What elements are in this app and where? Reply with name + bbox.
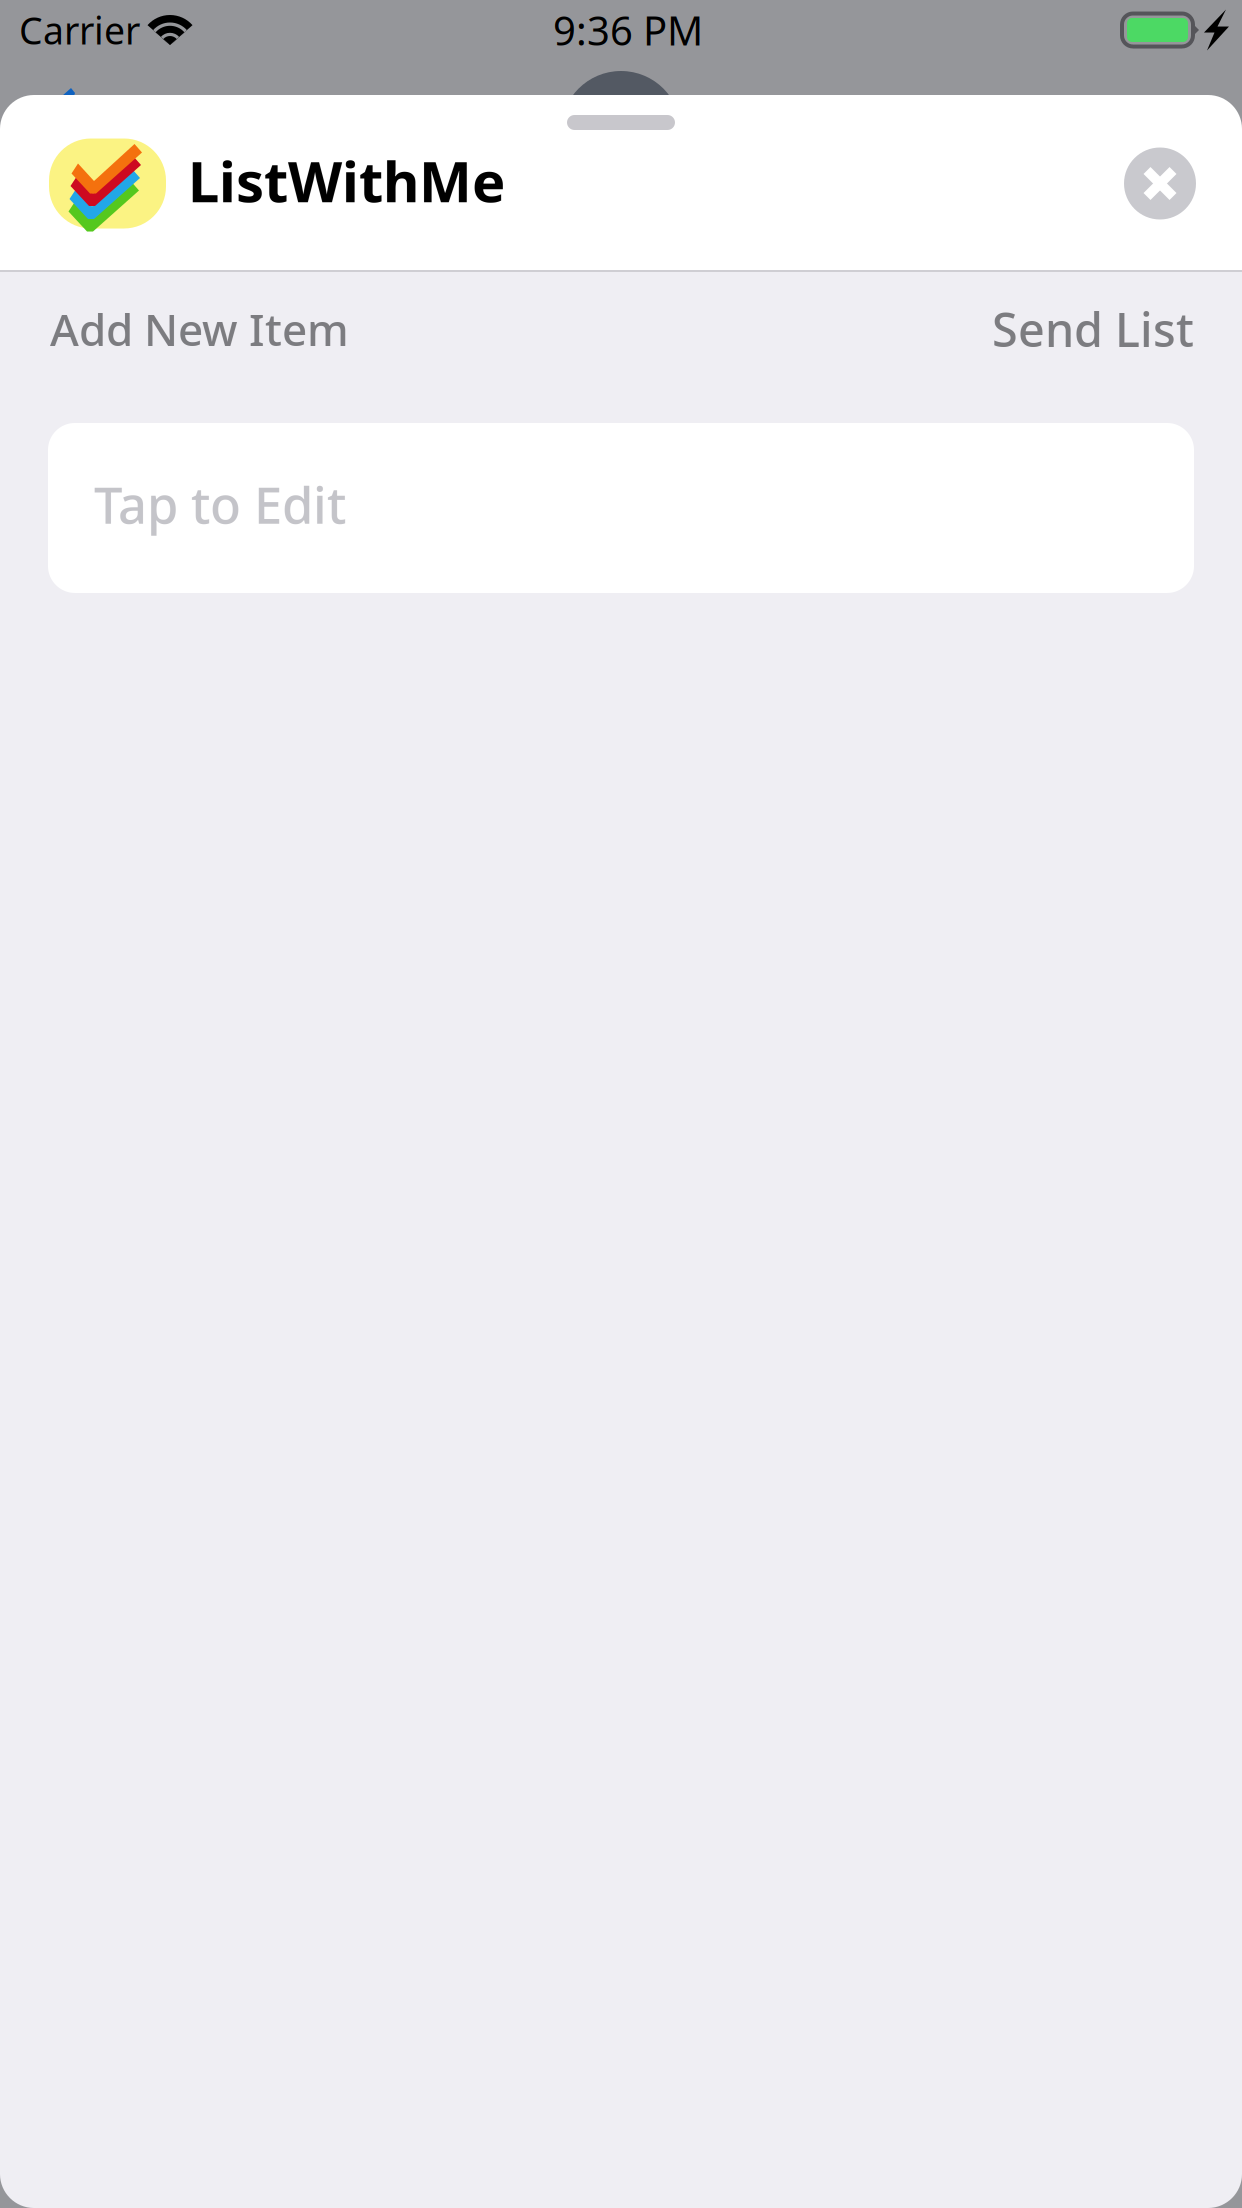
button[interactable]: Tap to Edit — [0, 423, 1242, 593]
staticText: Carrier — [19, 5, 140, 55]
staticText: ListWithMe — [188, 143, 505, 218]
button[interactable]: Send List — [968, 284, 1242, 374]
button[interactable]: Add New Item — [0, 286, 373, 372]
staticText: 9:36 PM — [553, 3, 703, 56]
staticText: Add New Item — [50, 300, 349, 358]
staticText: Tap to Edit — [94, 470, 346, 538]
button[interactable]: Close — [1105, 128, 1215, 238]
staticText: Send List — [992, 298, 1194, 360]
